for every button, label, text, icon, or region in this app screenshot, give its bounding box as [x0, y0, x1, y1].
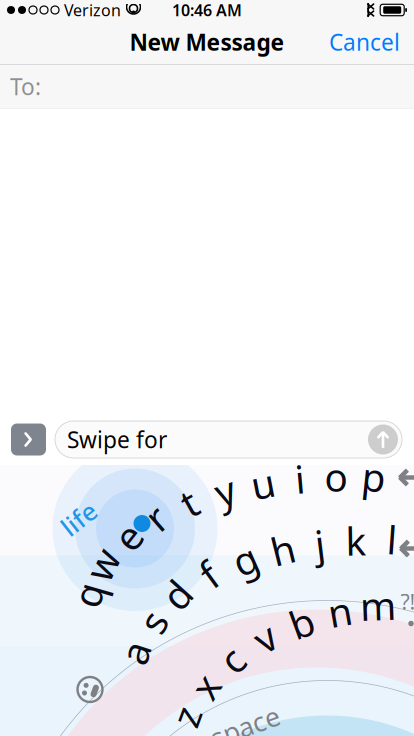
staticText: d [165, 569, 189, 620]
button[interactable]: Cancel [317, 19, 412, 65]
staticText: v [255, 612, 275, 663]
staticText: Swipe for [67, 424, 167, 454]
button[interactable]: Swipe for [55, 421, 402, 458]
staticText: x [195, 661, 215, 712]
staticText: New Message [129, 27, 284, 57]
staticText: m [360, 580, 396, 631]
staticText: ?!, [400, 587, 414, 616]
staticText: a [124, 627, 146, 678]
staticText: y [215, 465, 235, 516]
staticText: r [148, 492, 164, 543]
staticText: n [328, 586, 352, 637]
staticText: o [324, 451, 347, 502]
staticText: space [209, 709, 281, 736]
button[interactable]: Delete [397, 465, 414, 489]
staticText: b [290, 597, 314, 648]
staticText: 10:46 AM [172, 0, 242, 21]
staticText: u [251, 458, 275, 509]
staticText: j [315, 518, 325, 569]
staticText: Cancel [329, 27, 400, 57]
button[interactable]: To: [0, 64, 414, 108]
staticText: q [76, 569, 100, 620]
staticText: p [362, 451, 386, 502]
staticText: s [143, 596, 162, 647]
staticText: w [87, 539, 117, 590]
staticText: g [233, 534, 257, 585]
staticText: l [387, 514, 397, 565]
staticText: t [182, 477, 196, 528]
button[interactable]: Emoji [76, 675, 104, 703]
staticText: c [222, 634, 241, 685]
staticText: To: [10, 71, 41, 101]
staticText: h [271, 524, 295, 575]
staticText: i [295, 453, 305, 504]
staticText: k [345, 515, 366, 566]
staticText: Verizon [64, 0, 121, 21]
staticText: f [202, 549, 215, 600]
staticText: z [177, 691, 195, 736]
button[interactable]: Return [397, 529, 414, 557]
staticText: e [117, 511, 139, 562]
staticText: life [60, 502, 98, 535]
button[interactable]: Show apps [11, 423, 46, 455]
